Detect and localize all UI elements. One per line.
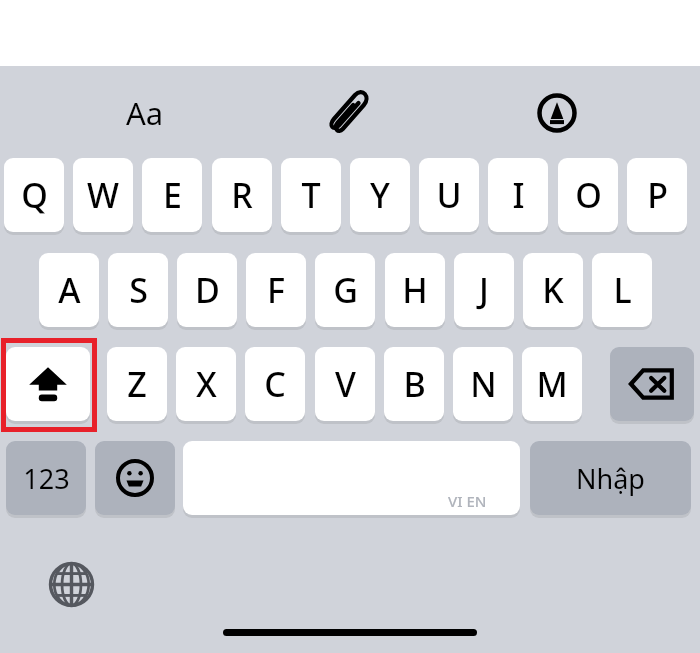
staticText: C xyxy=(264,361,286,407)
staticText: S xyxy=(129,267,148,313)
staticText: Y xyxy=(370,172,390,218)
staticText: G xyxy=(333,267,358,313)
button[interactable]: I xyxy=(488,158,548,232)
staticText: A xyxy=(58,267,81,313)
button[interactable]: J xyxy=(454,253,514,327)
button[interactable]: Q xyxy=(4,158,64,232)
staticText: R xyxy=(231,172,253,218)
button[interactable]: Aa xyxy=(108,86,182,140)
button[interactable]: E xyxy=(142,158,202,232)
button[interactable]: Y xyxy=(350,158,410,232)
staticText: I xyxy=(512,172,525,218)
button[interactable]: V xyxy=(315,347,375,421)
button[interactable]: W xyxy=(73,158,133,232)
staticText: U xyxy=(436,172,462,218)
staticText: L xyxy=(613,267,632,313)
button[interactable]: Emoji xyxy=(95,441,175,515)
button[interactable]: X xyxy=(176,347,236,421)
button[interactable]: Change keyboard xyxy=(43,556,99,612)
staticText: Z xyxy=(127,361,147,407)
staticText: O xyxy=(575,172,602,218)
button[interactable]: Backspace xyxy=(610,347,694,421)
staticText: E xyxy=(163,172,182,218)
button[interactable]: R xyxy=(212,158,272,232)
staticText: H xyxy=(402,267,428,313)
button[interactable]: P xyxy=(627,158,687,232)
button[interactable]: N xyxy=(453,347,513,421)
button[interactable]: Markup xyxy=(528,84,586,142)
button[interactable]: S xyxy=(108,253,168,327)
staticText: F xyxy=(267,267,285,313)
staticText: K xyxy=(542,267,564,313)
button[interactable]: A xyxy=(39,253,99,327)
staticText: Q xyxy=(21,172,48,218)
staticText: Nhập xyxy=(576,460,645,497)
staticText: W xyxy=(87,172,119,218)
button[interactable]: Z xyxy=(107,347,167,421)
staticText: B xyxy=(403,361,426,407)
staticText: V xyxy=(335,361,356,407)
button[interactable]: T xyxy=(281,158,341,232)
button[interactable]: Attach file xyxy=(318,84,378,142)
staticText: J xyxy=(479,267,489,313)
button[interactable]: M xyxy=(522,347,582,421)
staticText: N xyxy=(470,361,497,407)
staticText: P xyxy=(647,172,668,218)
button[interactable]: C xyxy=(245,347,305,421)
staticText: D xyxy=(195,267,220,313)
button[interactable]: U xyxy=(419,158,479,232)
button[interactable]: G xyxy=(315,253,375,327)
button[interactable]: F xyxy=(246,253,306,327)
button[interactable]: Space xyxy=(183,441,520,515)
button[interactable]: O xyxy=(558,158,618,232)
staticText: M xyxy=(536,361,568,407)
button[interactable]: 123 xyxy=(6,441,86,515)
button[interactable]: Shift xyxy=(6,347,90,421)
button[interactable]: K xyxy=(523,253,583,327)
button[interactable]: D xyxy=(177,253,237,327)
button[interactable]: B xyxy=(384,347,444,421)
button[interactable]: L xyxy=(592,253,652,327)
staticText: VI EN xyxy=(448,491,487,511)
button[interactable]: Nhập xyxy=(530,441,691,515)
staticText: T xyxy=(301,172,321,218)
button[interactable]: H xyxy=(385,253,445,327)
staticText: X xyxy=(196,361,217,407)
staticText: Aa xyxy=(126,92,164,134)
staticText: 123 xyxy=(23,460,70,497)
